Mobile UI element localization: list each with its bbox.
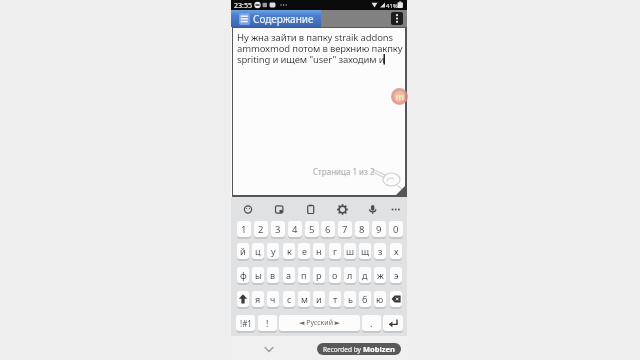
button[interactable] xyxy=(239,13,250,25)
staticText: у xyxy=(271,245,276,257)
button[interactable]: . xyxy=(362,315,381,331)
button[interactable]: 6 xyxy=(321,221,335,237)
staticText: . xyxy=(370,317,373,330)
staticText: й xyxy=(240,245,246,257)
button[interactable] xyxy=(237,291,249,307)
staticText: ш xyxy=(346,245,355,257)
button[interactable]: л xyxy=(344,267,356,283)
button[interactable]: ю xyxy=(374,291,386,307)
button[interactable]: э xyxy=(390,267,402,283)
button[interactable]: Содержание xyxy=(231,10,321,27)
staticText: m xyxy=(396,91,404,102)
staticText: г xyxy=(333,245,337,257)
staticText: Содержание xyxy=(253,12,314,26)
staticText: Страница 1 из 2 xyxy=(313,166,375,177)
button[interactable]: 8 xyxy=(355,221,369,237)
button[interactable]: ф xyxy=(237,267,249,283)
button[interactable]: ж xyxy=(374,267,386,283)
button[interactable]: г xyxy=(329,243,341,259)
staticText: 5 xyxy=(309,223,315,236)
staticText: 41% xyxy=(386,2,398,10)
staticText: л xyxy=(347,269,353,281)
button[interactable]: ц xyxy=(252,243,264,259)
staticText: х xyxy=(394,245,399,257)
button[interactable]: ! xyxy=(258,315,277,331)
button[interactable]: й xyxy=(237,243,249,259)
staticText: м xyxy=(301,293,308,305)
button[interactable]: Recorded by xyxy=(317,343,401,355)
button[interactable] xyxy=(391,12,403,25)
button[interactable]: с xyxy=(283,291,295,307)
staticText: !#1 xyxy=(240,318,252,329)
staticText: и xyxy=(316,293,322,305)
button[interactable]: m xyxy=(391,88,408,105)
staticText: Recorded by xyxy=(323,345,361,354)
button[interactable]: ь xyxy=(344,291,356,307)
staticText: 4 xyxy=(292,223,298,236)
button[interactable]: 0 xyxy=(389,221,403,237)
button[interactable]: д xyxy=(359,267,371,283)
staticText: ю xyxy=(376,293,384,305)
staticText: д xyxy=(362,269,368,281)
button[interactable]: ы xyxy=(252,267,264,283)
staticText: т xyxy=(333,293,338,305)
button[interactable]: и xyxy=(313,291,325,307)
button[interactable] xyxy=(383,315,403,331)
button[interactable]: 9 xyxy=(372,221,386,237)
staticText: ж xyxy=(377,269,384,281)
button[interactable]: т xyxy=(329,291,341,307)
button[interactable]: п xyxy=(298,267,310,283)
staticText: н xyxy=(316,245,322,257)
staticText: я xyxy=(255,293,261,305)
button[interactable] xyxy=(390,291,402,307)
staticText: е xyxy=(302,245,307,257)
staticText: 8 xyxy=(359,223,365,236)
button[interactable]: в xyxy=(267,267,279,283)
button[interactable]: я xyxy=(252,291,264,307)
staticText: к xyxy=(287,245,292,257)
button[interactable]: 5 xyxy=(305,221,319,237)
staticText: э xyxy=(394,269,399,281)
staticText: з xyxy=(378,245,383,257)
button[interactable]: 3 xyxy=(271,221,285,237)
staticText: с xyxy=(287,293,292,305)
staticText: spriting и ищем "user" заходим и xyxy=(237,53,385,66)
button[interactable]: 1 xyxy=(237,221,251,237)
button[interactable]: м xyxy=(298,291,310,307)
staticText: в xyxy=(270,269,276,281)
button[interactable]: е xyxy=(298,243,310,259)
staticText: б xyxy=(362,293,368,305)
button[interactable]: з xyxy=(374,243,386,259)
staticText: ч xyxy=(270,293,276,305)
staticText: ф xyxy=(240,269,247,281)
button[interactable]: у xyxy=(267,243,279,259)
button[interactable]: б xyxy=(359,291,371,307)
staticText: о xyxy=(332,269,338,281)
button[interactable]: о xyxy=(329,267,341,283)
button[interactable]: р xyxy=(313,267,325,283)
button[interactable]: к xyxy=(283,243,295,259)
staticText: 6 xyxy=(325,223,331,236)
button[interactable]: 7 xyxy=(338,221,352,237)
staticText: 0 xyxy=(393,223,399,236)
button[interactable]: щ xyxy=(359,243,371,259)
button[interactable]: а xyxy=(283,267,295,283)
staticText: ◄ Русский ► xyxy=(299,318,341,328)
button[interactable]: ш xyxy=(344,243,356,259)
staticText: Ну жна зайти в папку straik addons xyxy=(237,31,393,44)
button[interactable]: 4 xyxy=(288,221,302,237)
button[interactable]: ◄ Русский ► xyxy=(279,315,360,331)
staticText: 7 xyxy=(342,223,348,236)
button[interactable]: 2 xyxy=(254,221,268,237)
staticText: ь xyxy=(348,293,353,305)
button[interactable]: Ну жна зайти в папку straik addons xyxy=(233,28,405,195)
staticText: 9 xyxy=(376,223,382,236)
staticText: а xyxy=(286,269,292,281)
button[interactable]: ч xyxy=(267,291,279,307)
button[interactable]: н xyxy=(313,243,325,259)
staticText: Mobizen xyxy=(363,344,395,354)
staticText: 2 xyxy=(258,223,264,236)
staticText: 23:55 xyxy=(234,1,252,11)
button[interactable]: !#1 xyxy=(236,315,255,331)
button[interactable]: х xyxy=(390,243,402,259)
